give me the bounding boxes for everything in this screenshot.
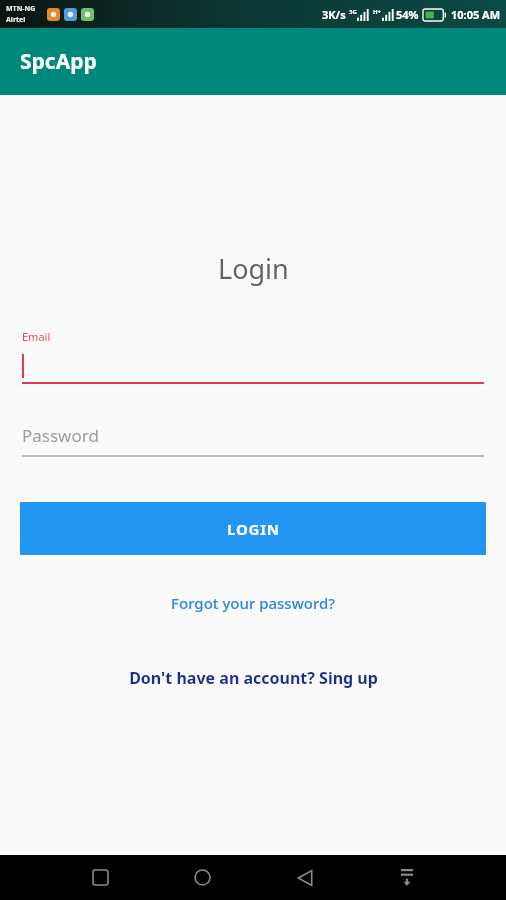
staticText: 3G bbox=[349, 8, 357, 16]
staticText: 10:05 AM bbox=[451, 7, 501, 22]
button[interactable]: Home bbox=[180, 855, 225, 900]
staticText: MTN-NG bbox=[6, 4, 36, 14]
button[interactable]: Recent apps bbox=[78, 855, 123, 900]
staticText: Email bbox=[22, 329, 51, 344]
staticText: Login bbox=[218, 250, 289, 287]
staticText: Airtel bbox=[6, 15, 26, 25]
button[interactable]: Email bbox=[22, 329, 484, 384]
button[interactable]: Forgot your password? bbox=[0, 585, 506, 621]
button[interactable]: Don't have an account? Sing up bbox=[0, 659, 506, 697]
button[interactable]: LOGIN bbox=[20, 502, 486, 555]
staticText: H+ bbox=[373, 8, 382, 16]
staticText: SpcApp bbox=[20, 47, 97, 76]
staticText: Don't have an account? Sing up bbox=[129, 667, 378, 689]
staticText: Password bbox=[22, 424, 99, 447]
staticText: LOGIN bbox=[227, 519, 280, 539]
staticText: 3K/s bbox=[322, 7, 346, 22]
staticText: Forgot your password? bbox=[171, 593, 335, 613]
button[interactable]: Hide keyboard bbox=[384, 855, 429, 900]
staticText: 54% bbox=[396, 7, 419, 22]
button[interactable]: Password bbox=[22, 422, 484, 457]
button[interactable]: Back bbox=[282, 855, 327, 900]
